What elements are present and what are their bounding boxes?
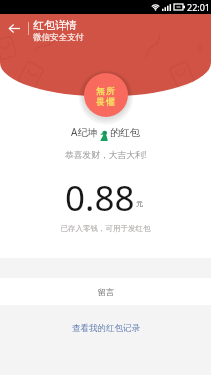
staticText: 畏懼 xyxy=(96,97,117,108)
staticText: 0.88 xyxy=(65,174,135,222)
staticText: 元 xyxy=(136,199,143,208)
button[interactable]: Back xyxy=(0,14,28,42)
staticText: 已存入零钱，可用于发红包 xyxy=(0,224,211,233)
button[interactable]: 查看我的红包记录 xyxy=(0,320,211,337)
staticText: 红包详情 xyxy=(33,18,77,32)
staticText: 微信安全支付 xyxy=(33,32,84,43)
button[interactable]: 留言 xyxy=(0,278,211,305)
staticText: A纪坤 xyxy=(71,125,98,139)
staticText: 留言 xyxy=(98,287,114,297)
staticText: 恭喜发财，大吉大利! xyxy=(0,149,211,161)
staticText: 22:01 xyxy=(187,1,211,13)
staticText: 無所 xyxy=(96,86,117,97)
staticText: 查看我的红包记录 xyxy=(72,323,140,334)
staticText: 的红包 xyxy=(110,126,140,139)
